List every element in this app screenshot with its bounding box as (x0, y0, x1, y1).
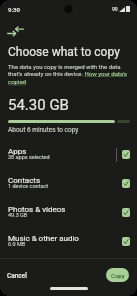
other: Transfer data (7, 26, 24, 37)
staticText: The data you copy is merged with the dat… (8, 63, 132, 86)
staticText: Copy (111, 272, 125, 279)
button[interactable]: Cancel (2, 268, 32, 284)
staticText: Choose what to copy (8, 45, 136, 59)
button[interactable]: Contacts (0, 169, 137, 198)
button[interactable]: Copy (106, 268, 129, 282)
staticText: 38 apps selected (8, 154, 50, 160)
button[interactable]: Select Music & other audio (122, 237, 130, 246)
button[interactable]: Select Photos & videos (122, 208, 130, 217)
staticText: 6.0 MB (8, 241, 26, 247)
button[interactable]: Photos & videos (0, 198, 137, 227)
staticText: Photos & videos (8, 205, 66, 214)
staticText: 1 device contact (8, 183, 49, 189)
staticText: Cancel (7, 272, 27, 280)
button[interactable]: Select Contacts (122, 179, 130, 188)
button[interactable]: Select Apps (122, 150, 130, 159)
staticText: 90 (112, 6, 118, 12)
staticText: Apps (8, 147, 27, 156)
staticText: 54.30 GB (8, 96, 69, 114)
button[interactable]: Music & other audio (0, 227, 137, 256)
staticText: Music & other audio (8, 234, 79, 243)
staticText: 9:30 (8, 6, 20, 13)
staticText: About 6 minutes to copy (8, 126, 79, 134)
staticText: Contacts (8, 176, 41, 185)
staticText: 49.3 GB (8, 212, 28, 218)
button[interactable]: Apps (0, 140, 137, 169)
